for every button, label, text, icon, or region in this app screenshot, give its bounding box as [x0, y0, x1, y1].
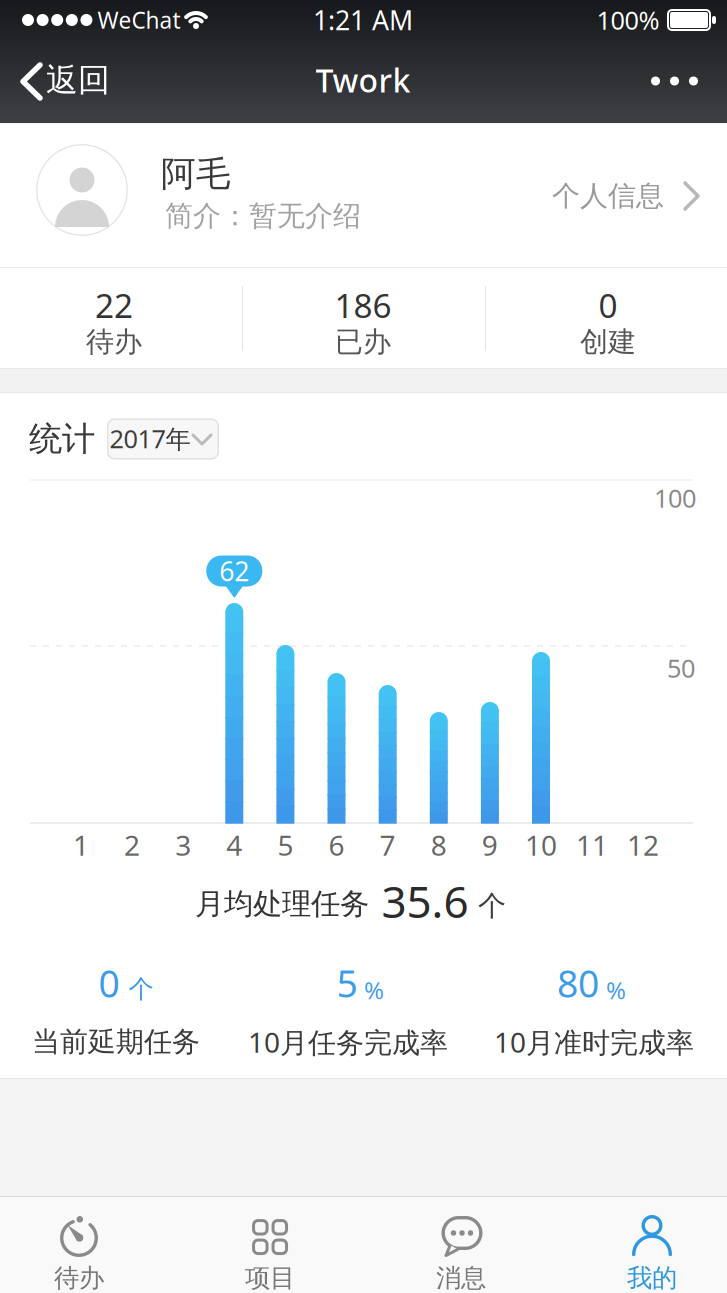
staticText: 返回: [46, 60, 110, 100]
button[interactable]: 22: [0, 268, 234, 368]
staticText: Twork: [315, 59, 410, 101]
staticText: 5: [336, 958, 357, 1008]
staticText: 消息: [436, 1262, 486, 1293]
staticText: 62: [219, 553, 249, 589]
staticText: 2017年: [109, 422, 190, 455]
staticText: 5: [277, 826, 293, 864]
staticText: 待办: [54, 1262, 104, 1293]
staticText: 项目: [245, 1262, 295, 1293]
staticText: 22: [95, 283, 133, 327]
staticText: 当前延期任务: [32, 1025, 200, 1059]
button[interactable]: 返回: [0, 0, 150, 122]
button[interactable]: 0: [488, 268, 727, 368]
staticText: 阿毛: [161, 153, 231, 195]
staticText: 50: [667, 651, 695, 685]
button[interactable]: 2017年: [107, 418, 219, 459]
staticText: 11: [576, 826, 608, 864]
staticText: 10月任务完成率: [248, 1023, 448, 1061]
staticText: 我的: [627, 1262, 677, 1293]
staticText: 2: [124, 826, 140, 864]
staticText: 100%: [596, 3, 659, 37]
staticText: 10: [525, 826, 557, 864]
staticText: 月均处理任务: [195, 886, 369, 922]
staticText: 8: [431, 826, 447, 864]
button[interactable]: 消息: [386, 1197, 536, 1293]
staticText: 1:21 AM: [313, 2, 413, 38]
button[interactable]: [627, 0, 727, 122]
button[interactable]: 我的: [577, 1197, 727, 1293]
staticText: 4: [226, 826, 242, 864]
staticText: 0: [598, 283, 617, 327]
staticText: 7: [380, 826, 396, 864]
button[interactable]: 待办: [4, 1197, 154, 1293]
staticText: 35.6: [381, 872, 468, 930]
button[interactable]: 阿毛: [0, 122, 727, 267]
staticText: 100: [654, 481, 696, 515]
staticText: 简介：暂无介绍: [165, 199, 361, 233]
staticText: 1: [73, 826, 89, 864]
staticText: 统计: [29, 418, 95, 459]
staticText: 待办: [86, 325, 142, 359]
staticText: 80: [557, 958, 599, 1008]
staticText: 个: [478, 889, 506, 923]
staticText: 创建: [580, 325, 636, 359]
staticText: 10月准时完成率: [494, 1023, 694, 1061]
staticText: 6: [328, 826, 344, 864]
staticText: %: [606, 974, 626, 1006]
staticText: 0: [98, 958, 119, 1008]
staticText: 9: [482, 826, 498, 864]
staticText: 个人信息: [552, 179, 664, 213]
button[interactable]: 项目: [195, 1197, 345, 1293]
staticText: 12: [627, 826, 659, 864]
button[interactable]: 186: [243, 268, 483, 368]
staticText: 个: [128, 973, 153, 1004]
staticText: 已办: [335, 325, 391, 359]
staticText: 186: [334, 283, 391, 327]
staticText: 3: [175, 826, 191, 864]
staticText: WeChat: [97, 5, 180, 35]
staticText: %: [364, 974, 384, 1006]
